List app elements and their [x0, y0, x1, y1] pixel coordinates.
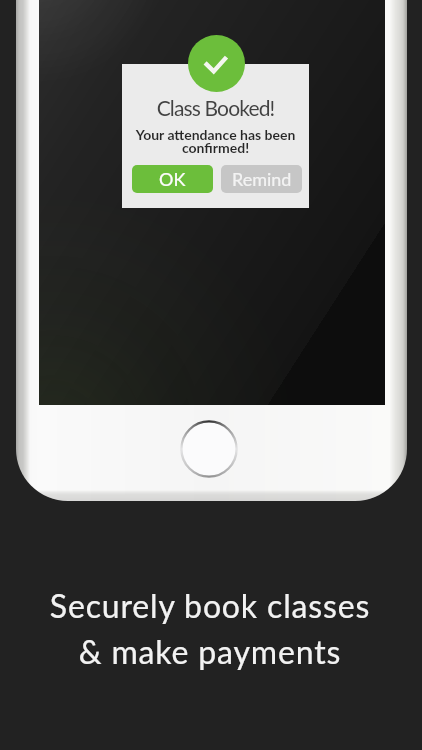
- staticText: Your attendance has been confirmed!: [122, 126, 309, 156]
- button[interactable]: Home: [180, 420, 238, 478]
- button[interactable]: Booking confirmed: [188, 35, 245, 92]
- button[interactable]: OK: [132, 165, 213, 193]
- staticText: OK: [159, 168, 186, 190]
- staticText: Securely book classes & make payments: [0, 586, 421, 671]
- button[interactable]: Remind: [221, 165, 302, 193]
- staticText: Remind: [232, 168, 292, 190]
- staticText: Class Booked!: [122, 95, 309, 120]
